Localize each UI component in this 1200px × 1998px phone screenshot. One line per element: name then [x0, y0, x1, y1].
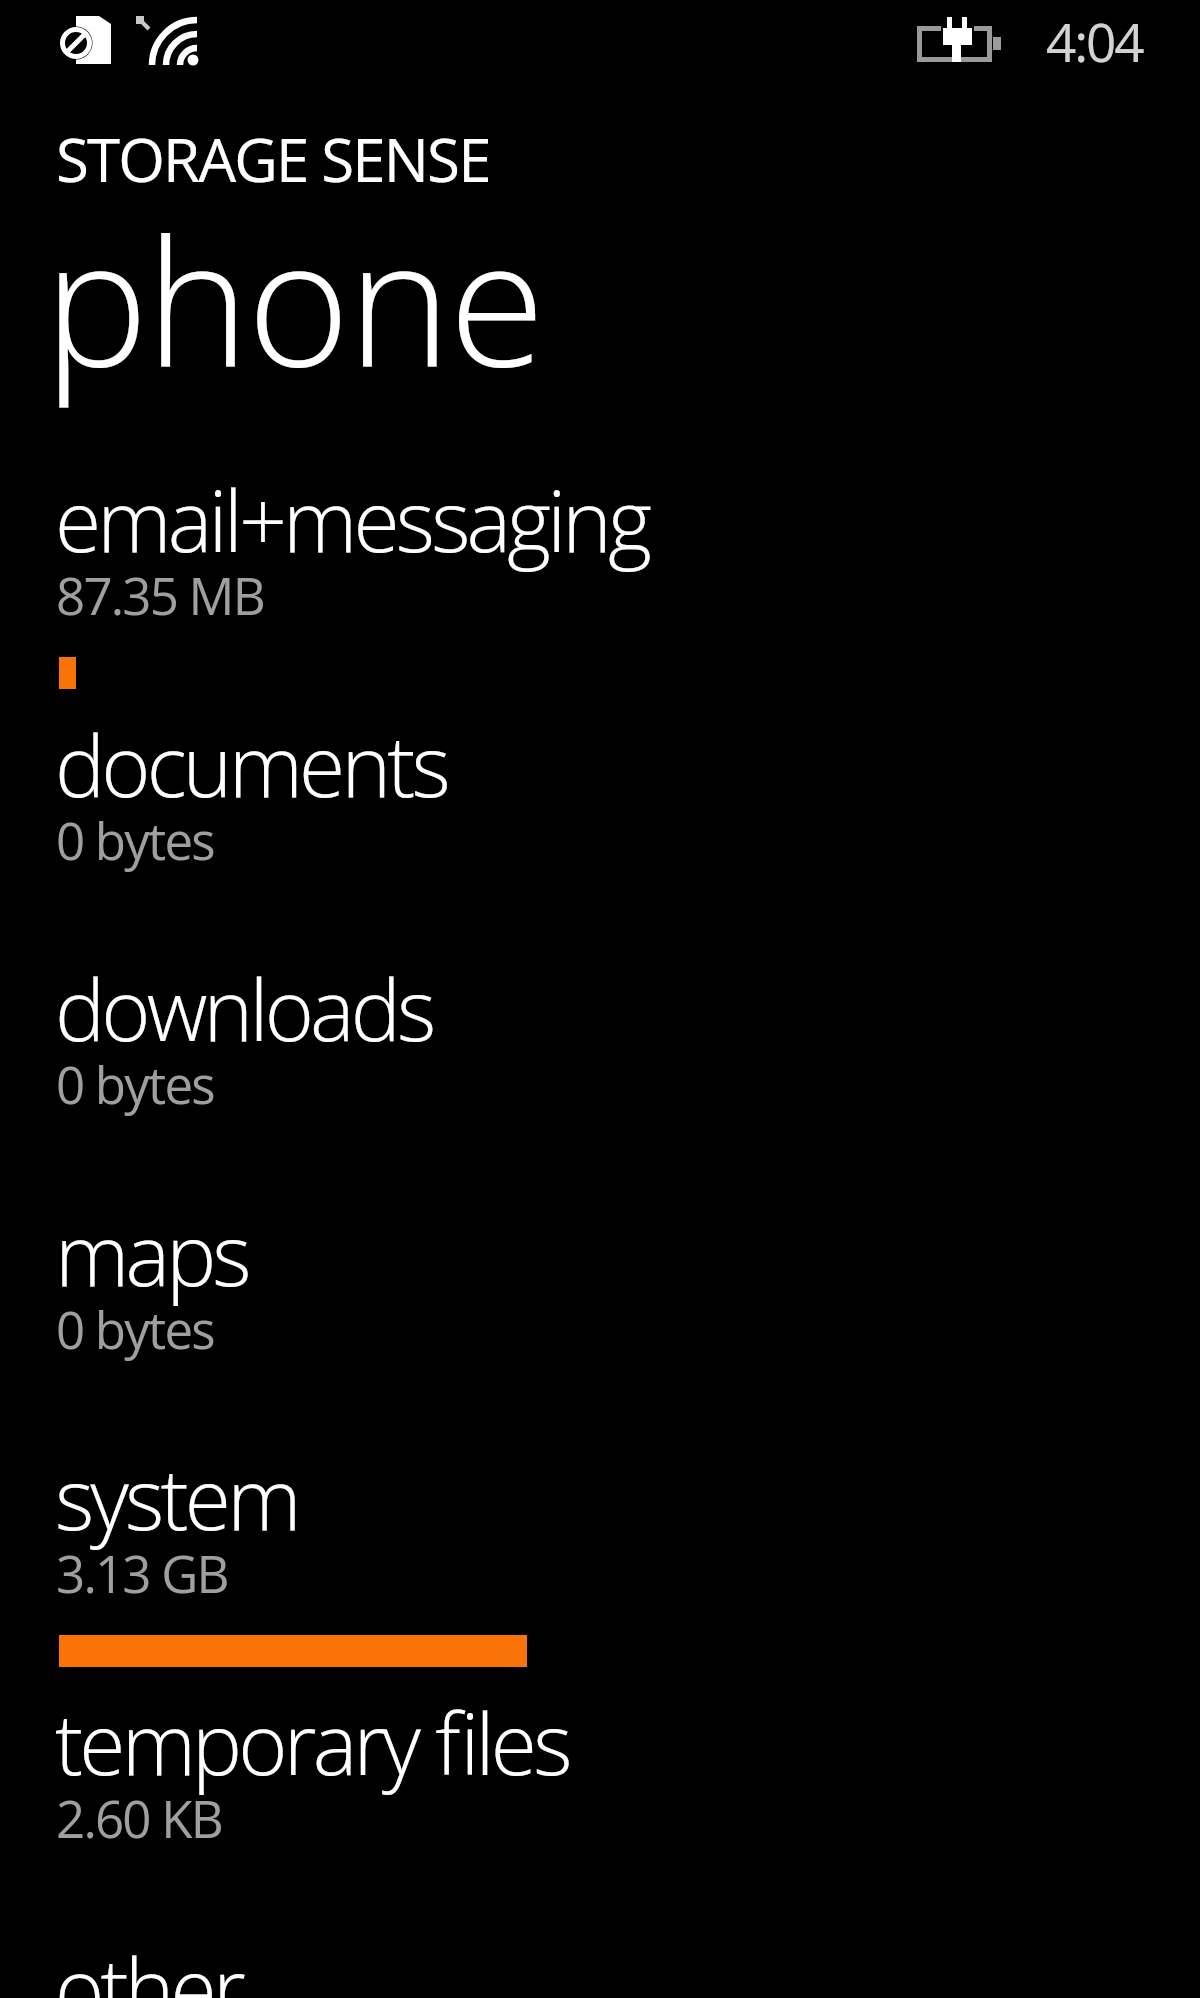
staticText: phone	[44, 179, 544, 417]
button[interactable]: email+messaging	[0, 462, 1200, 706]
button[interactable]: other	[0, 1930, 1200, 1998]
staticText: documents	[55, 707, 447, 821]
staticText: other	[55, 1930, 242, 1998]
button[interactable]: maps	[0, 1196, 1200, 1440]
staticText: 0 bytes	[56, 805, 214, 874]
staticText: system	[55, 1440, 298, 1554]
staticText: temporary files	[55, 1685, 569, 1799]
staticText: 0 bytes	[56, 1294, 214, 1363]
staticText: 0 bytes	[56, 1049, 214, 1118]
other: Wi-Fi signal	[134, 14, 204, 72]
button[interactable]: documents	[0, 707, 1200, 951]
staticText: 4:04	[1046, 5, 1143, 77]
staticText: maps	[55, 1196, 248, 1310]
staticText: downloads	[55, 951, 433, 1065]
staticText: email+messaging	[55, 462, 649, 576]
button[interactable]: temporary files	[0, 1685, 1200, 1929]
button[interactable]: downloads	[0, 951, 1200, 1195]
other: Battery charging	[915, 15, 1003, 65]
staticText: 3.13 GB	[56, 1538, 228, 1607]
staticText: 87.35 MB	[56, 560, 264, 629]
staticText: 2.60 KB	[56, 1783, 222, 1852]
staticText: STORAGE SENSE	[56, 118, 490, 200]
button[interactable]: system	[0, 1440, 1200, 1684]
other: No SIM card	[57, 15, 113, 71]
